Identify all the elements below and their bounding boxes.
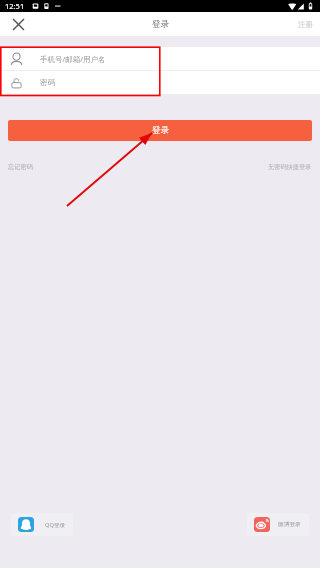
- staticText: QQ登录: [45, 521, 66, 529]
- staticText: 无密码快捷登录: [268, 163, 312, 171]
- button[interactable]: 手机号/邮箱/用户名: [0, 47, 320, 70]
- staticText: 注册: [298, 20, 313, 29]
- button[interactable]: QQ登录: [11, 513, 73, 536]
- staticText: 忘记密码: [8, 163, 34, 171]
- button[interactable]: 微博登录: [247, 513, 309, 536]
- button[interactable]: 无密码快捷登录: [268, 163, 312, 171]
- staticText: 密码: [40, 78, 55, 87]
- staticText: 12:51: [5, 1, 25, 11]
- staticText: 微博登录: [278, 521, 301, 528]
- staticText: 登录: [152, 19, 169, 30]
- button[interactable]: 忘记密码: [8, 163, 34, 171]
- button[interactable]: 密码: [0, 71, 320, 94]
- button[interactable]: 注册: [298, 20, 313, 29]
- button[interactable]: Close: [6, 12, 30, 36]
- staticText: 手机号/邮箱/用户名: [40, 54, 106, 64]
- button[interactable]: 登录: [8, 120, 312, 141]
- staticText: 登录: [152, 125, 169, 136]
